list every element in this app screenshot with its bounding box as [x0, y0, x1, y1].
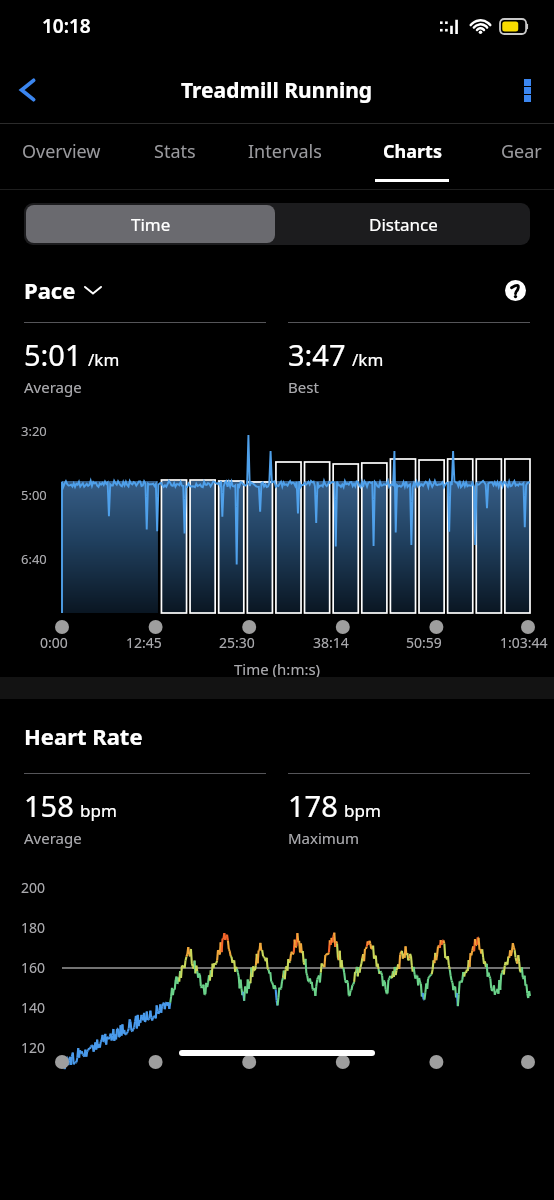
staticText: 1:03:44 — [500, 633, 548, 652]
staticText: /km — [88, 348, 120, 371]
staticText: 12:45 — [126, 633, 162, 652]
staticText: 6:40 — [21, 550, 47, 568]
button[interactable]: Gear — [501, 124, 542, 190]
button[interactable]: Intervals — [248, 124, 322, 190]
staticText: Maximum — [288, 828, 360, 848]
button[interactable]: Time — [26, 205, 275, 243]
staticText: Overview — [22, 139, 101, 164]
staticText: Average — [24, 828, 82, 848]
staticText: Charts — [383, 139, 442, 164]
staticText: 160 — [21, 958, 46, 977]
staticText: 120 — [21, 1038, 46, 1057]
staticText: Treadmill Running — [181, 76, 373, 105]
staticText: 10:18 — [42, 13, 91, 39]
staticText: Gear — [501, 139, 542, 164]
button[interactable]: More options — [500, 63, 554, 117]
staticText: Time — [131, 213, 171, 236]
button[interactable]: Back — [0, 62, 56, 118]
staticText: 0:00 — [40, 633, 68, 652]
staticText: 25:30 — [219, 633, 255, 652]
staticText: Distance — [369, 213, 438, 236]
staticText: bpm — [80, 799, 117, 822]
staticText: 3:20 — [21, 422, 47, 440]
staticText: Heart Rate — [24, 721, 143, 751]
staticText: 178 — [288, 786, 338, 825]
staticText: Pace — [24, 275, 76, 305]
staticText: 5:00 — [21, 486, 47, 504]
staticText: /km — [352, 348, 384, 371]
staticText: Intervals — [248, 139, 322, 164]
staticText: 3:47 — [288, 335, 346, 374]
staticText: 50:59 — [406, 633, 442, 652]
staticText: 180 — [21, 918, 46, 937]
button[interactable]: Help — [500, 275, 530, 305]
button[interactable]: Stats — [154, 124, 196, 190]
staticText: 200 — [21, 878, 46, 897]
staticText: Time (h:m:s) — [234, 659, 321, 679]
staticText: 38:14 — [313, 633, 349, 652]
button[interactable]: Charts — [375, 124, 449, 190]
staticText: 5:01 — [24, 335, 82, 374]
staticText: Best — [288, 377, 319, 397]
button[interactable]: Overview — [22, 124, 101, 190]
staticText: 158 — [24, 786, 74, 825]
button[interactable]: Distance — [277, 203, 530, 245]
staticText: Stats — [154, 139, 196, 164]
button[interactable]: Pace — [24, 275, 101, 305]
staticText: 140 — [21, 998, 46, 1017]
staticText: Average — [24, 377, 82, 397]
staticText: bpm — [344, 799, 381, 822]
